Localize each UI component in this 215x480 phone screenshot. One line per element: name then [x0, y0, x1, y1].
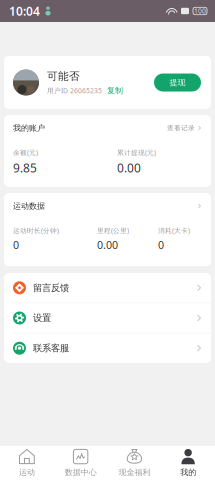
staticText: 0 [13, 238, 19, 252]
button[interactable]: 数据中心 [54, 446, 108, 480]
staticText: 我的 [180, 467, 196, 477]
staticText: 用户ID 26065235 [47, 86, 102, 95]
staticText: 累计提现(元) [117, 148, 156, 157]
button[interactable]: 现金福利 [107, 446, 161, 480]
staticText: 100 [194, 7, 206, 15]
button[interactable]: 提现 [154, 73, 201, 91]
staticText: 提现 [169, 78, 185, 87]
button[interactable]: 设置 [4, 303, 211, 333]
button[interactable]: 查看记录 [167, 124, 201, 132]
staticText: 里程(公里) [97, 226, 129, 235]
staticText: 留言反馈 [33, 282, 69, 294]
staticText: 运动 [19, 467, 35, 477]
staticText: 可能否 [47, 69, 80, 83]
staticText: 数据中心 [65, 467, 97, 477]
staticText: 联系客服 [33, 342, 69, 354]
staticText: 9.85 [13, 160, 37, 176]
button[interactable]: 运动 [0, 446, 54, 480]
staticText: 0 [158, 238, 164, 252]
staticText: 复制 [107, 86, 123, 95]
button[interactable]: 联系客服 [4, 333, 211, 363]
staticText: 0.00 [117, 160, 141, 176]
button[interactable]: 复制 [107, 86, 123, 95]
button[interactable]: 我的 [161, 446, 215, 480]
staticText: 10:04 [9, 3, 40, 19]
button[interactable]: 运动数据 [13, 193, 201, 219]
staticText: 0.00 [97, 238, 118, 252]
staticText: 运动数据 [13, 201, 45, 211]
button[interactable]: 留言反馈 [4, 273, 211, 303]
staticText: 余额(元) [13, 148, 38, 157]
staticText: 我的账户 [13, 123, 45, 133]
staticText: 现金福利 [118, 467, 150, 477]
staticText: 消耗(大卡) [158, 226, 190, 235]
staticText: 查看记录 [167, 124, 195, 132]
staticText: 运动时长(分钟) [13, 226, 59, 235]
staticText: 设置 [33, 312, 51, 324]
